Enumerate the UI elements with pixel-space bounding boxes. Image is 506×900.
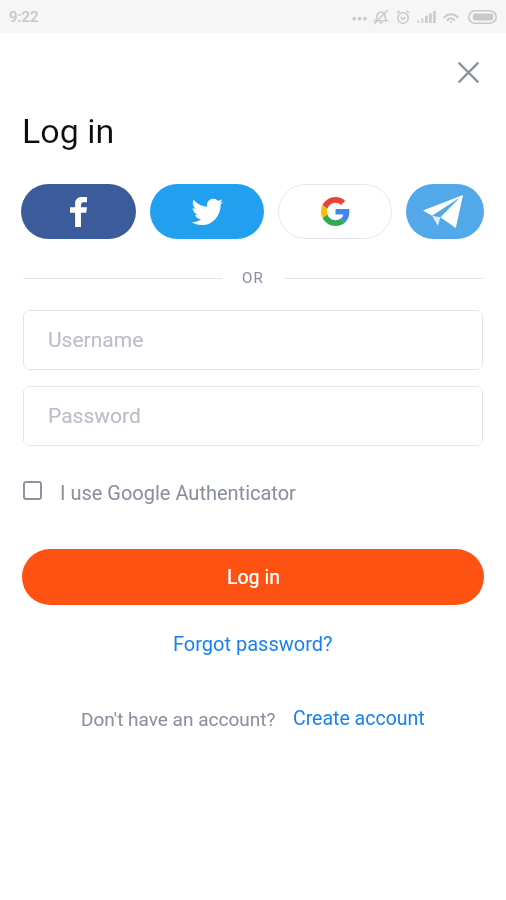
button[interactable]: Close [448,52,488,92]
staticText: OR [242,269,264,287]
button[interactable]: I use Google Authenticator [23,472,296,509]
button[interactable]: Username [23,310,483,370]
staticText: Don't have an account? [81,708,276,730]
staticText: Log in [227,566,280,589]
button[interactable]: Forgot password? [163,626,343,661]
button[interactable] [21,184,136,239]
button[interactable]: Create account [293,707,425,730]
button[interactable] [150,184,264,239]
staticText: Username [48,328,144,353]
staticText: Password [48,404,141,429]
button[interactable] [278,184,392,239]
button[interactable]: Password [23,386,483,446]
button[interactable]: Log in [22,549,484,605]
staticText: Log in [22,111,115,151]
staticText: 9:22 [9,8,39,26]
staticText: I use Google Authenticator [60,481,296,504]
button[interactable] [406,184,484,239]
